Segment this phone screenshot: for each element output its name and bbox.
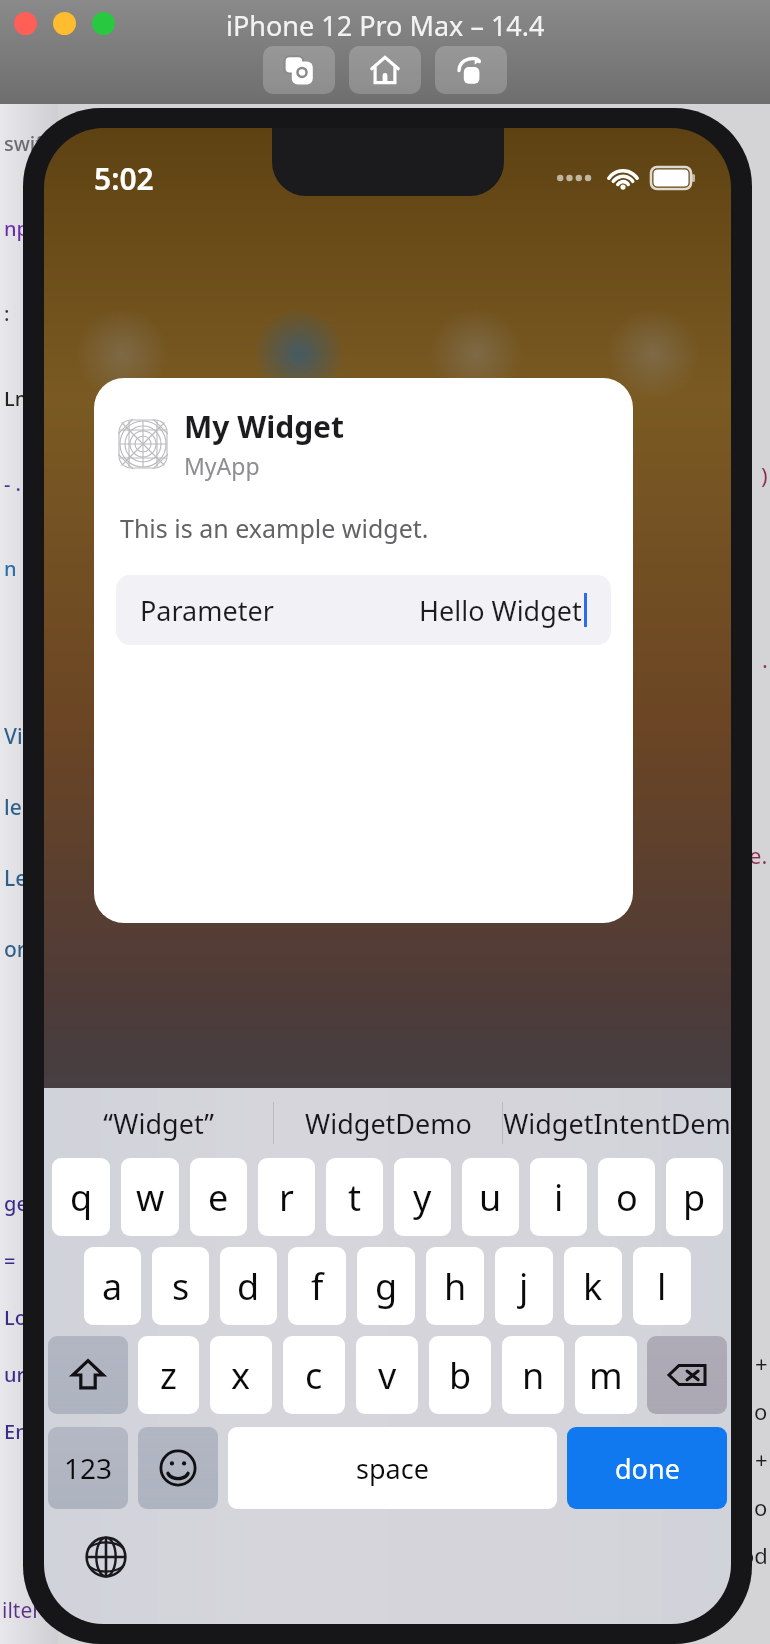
staticText: n [4,555,17,582]
staticText: “Widget” [103,1105,214,1142]
staticText: o [616,1173,638,1222]
staticText: - . [4,470,22,497]
staticText: En [4,1418,28,1445]
staticText: or [4,935,26,964]
button[interactable]: Zoom [92,12,115,35]
button[interactable]: Close [14,12,37,35]
button[interactable]: space [228,1427,557,1509]
button[interactable]: q [52,1158,110,1236]
button[interactable]: Change keyboard [76,1527,136,1587]
button[interactable]: j [495,1247,553,1325]
button[interactable]: Home [349,46,421,94]
staticText: done [615,1450,680,1487]
staticText: Hello Widget [419,592,582,629]
staticText: w [136,1173,165,1222]
staticText: ur [4,1361,25,1388]
staticText: 123 [64,1449,113,1487]
button[interactable]: a [84,1247,141,1325]
staticText: b [449,1351,472,1400]
button[interactable]: Parameter [116,575,611,645]
staticText: r [279,1173,294,1222]
staticText: Parameter [140,592,274,629]
staticText: o [754,1396,768,1426]
staticText: c [305,1351,323,1400]
button[interactable]: g [357,1247,415,1325]
button[interactable]: n [502,1336,564,1414]
staticText: m [589,1351,623,1400]
staticText: Le [4,864,28,893]
staticText: WidgetIntentDemo [503,1105,731,1142]
button[interactable]: t [326,1158,383,1236]
staticText: le [4,793,22,822]
staticText: space [356,1450,429,1487]
staticText: MyApp [184,450,260,481]
staticText: : [4,300,10,327]
staticText: l [657,1262,667,1311]
staticText: My Widget [184,406,345,447]
button[interactable]: WidgetIntentDemo [503,1088,731,1158]
staticText: ge [4,1190,28,1217]
staticText: = [4,1247,16,1274]
button[interactable]: b [429,1336,491,1414]
button[interactable]: Rotate [435,46,507,94]
button[interactable]: w [121,1158,179,1236]
staticText: o [754,1492,768,1522]
staticText: This is an example widget. [120,511,429,545]
staticText: d [237,1262,260,1311]
button[interactable]: Minimize [53,12,76,35]
staticText: Lo [4,1304,27,1331]
button[interactable]: m [575,1336,637,1414]
staticText: · [762,650,768,680]
button[interactable]: i [530,1158,587,1236]
button[interactable]: Emoji [138,1427,218,1509]
staticText: Lm [4,385,34,412]
staticText: x [231,1351,251,1400]
button[interactable]: s [152,1247,209,1325]
staticText: ) [761,460,768,490]
staticText: k [583,1262,603,1311]
button[interactable]: f [288,1247,346,1325]
button[interactable]: v [356,1336,418,1414]
button[interactable]: p [666,1158,723,1236]
staticText: od [741,1540,768,1570]
staticText: p [683,1173,706,1222]
button[interactable]: z [138,1336,199,1414]
staticText: np [4,215,29,242]
button[interactable]: Shift [48,1336,128,1414]
button[interactable]: Screenshot [263,46,335,94]
button[interactable]: h [426,1247,484,1325]
button[interactable]: d [220,1247,277,1325]
staticText: g [375,1262,398,1311]
button[interactable]: r [258,1158,315,1236]
button[interactable]: o [598,1158,655,1236]
staticText: s [172,1262,190,1311]
staticText: j [519,1262,529,1311]
button[interactable]: Backspace [647,1336,727,1414]
button[interactable]: c [283,1336,345,1414]
button[interactable]: WidgetDemo [274,1088,502,1158]
button[interactable]: u [462,1158,519,1236]
staticText: y [413,1173,432,1222]
button[interactable]: y [394,1158,451,1236]
button[interactable]: done [567,1427,727,1509]
staticText: ilter [2,1596,41,1625]
staticText: t [348,1173,361,1222]
staticText: swift [4,130,51,157]
staticText: v [378,1351,397,1400]
button[interactable]: l [633,1247,691,1325]
staticText: h [444,1262,467,1311]
staticText: a [102,1262,123,1311]
button[interactable]: 123 [48,1427,128,1509]
staticText: 5:02 [94,158,154,199]
button[interactable]: e [190,1158,247,1236]
staticText: WidgetDemo [305,1105,472,1142]
staticText: + [755,1444,768,1474]
staticText: Vi [4,722,23,751]
staticText: i [554,1173,564,1222]
button[interactable]: x [210,1336,272,1414]
staticText: e [208,1173,229,1222]
button[interactable]: “Widget” [44,1088,273,1158]
button[interactable]: k [564,1247,622,1325]
staticText: f [311,1262,324,1311]
staticText: u [479,1173,502,1222]
